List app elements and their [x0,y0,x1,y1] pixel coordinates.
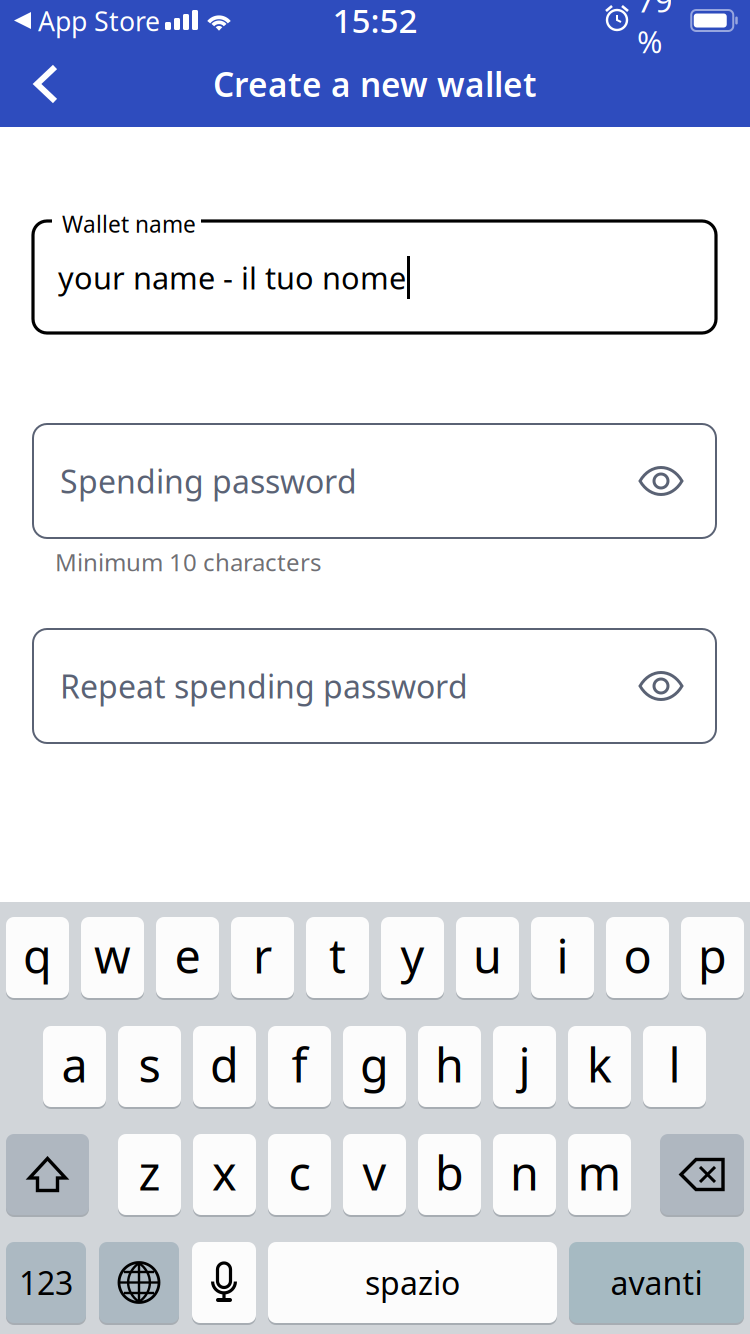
button[interactable]: t [306,917,369,998]
button[interactable]: q [6,917,69,998]
button[interactable]: Dictation [192,1242,256,1323]
button[interactable]: o [606,917,669,998]
staticText: your name - il tuo nome [58,257,406,298]
staticText: Spending password [60,460,357,502]
button[interactable]: a [43,1026,106,1107]
staticText: b [435,1141,464,1203]
staticText: n [510,1141,539,1203]
button[interactable]: d [193,1026,256,1107]
button[interactable]: g [343,1026,406,1107]
button[interactable]: k [568,1026,631,1107]
staticText: Repeat spending password [60,665,468,707]
staticText: d [210,1033,239,1095]
staticText: i [556,924,568,986]
button[interactable]: x [193,1134,256,1215]
button[interactable]: s [118,1026,181,1107]
staticText: v [362,1141,386,1203]
staticText: s [138,1033,160,1095]
staticText: m [577,1141,621,1203]
button[interactable]: avanti [569,1242,744,1323]
staticText: r [253,924,272,986]
button[interactable]: j [493,1026,556,1107]
button[interactable]: i [531,917,594,998]
button[interactable]: v [343,1134,406,1215]
button[interactable]: l [643,1026,706,1107]
button[interactable]: n [493,1134,556,1215]
staticText: k [587,1033,612,1095]
button[interactable]: e [156,917,219,998]
button[interactable]: u [456,917,519,998]
button[interactable]: h [418,1026,481,1107]
staticText: h [435,1033,464,1095]
button[interactable]: c [268,1134,331,1215]
staticText: z [138,1141,160,1203]
button[interactable]: w [81,917,144,998]
button[interactable]: spazio [268,1242,557,1323]
button[interactable]: p [681,917,744,998]
staticText: spazio [365,1261,460,1304]
button[interactable]: z [118,1134,181,1215]
staticText: e [174,924,200,986]
staticText: 79% [637,0,673,62]
staticText: w [94,924,131,986]
button[interactable]: Show password [623,629,699,743]
staticText: Minimum 10 characters [55,546,321,578]
staticText: j [518,1033,530,1095]
button[interactable]: r [231,917,294,998]
staticText: u [473,924,502,986]
button[interactable]: Shift [6,1134,89,1215]
button[interactable]: b [418,1134,481,1215]
staticText: p [698,924,727,986]
button[interactable]: Next keyboard [99,1242,179,1323]
staticText: t [329,924,346,986]
staticText: 15:52 [332,0,417,42]
staticText: a [61,1033,87,1095]
button[interactable]: y [381,917,444,998]
button[interactable]: Delete [660,1134,744,1215]
button[interactable]: 123 [6,1242,86,1323]
staticText: c [288,1141,310,1203]
staticText: Create a new wallet [213,62,537,106]
staticText: q [23,924,52,986]
button[interactable]: m [568,1134,631,1215]
staticText: y [400,924,424,986]
button[interactable]: f [268,1026,331,1107]
staticText: o [623,924,651,986]
staticText: 123 [19,1261,73,1304]
staticText: f [291,1033,307,1095]
staticText: x [212,1141,237,1203]
button[interactable]: Show password [623,424,699,538]
button[interactable]: Back [12,56,80,112]
staticText: avanti [610,1261,702,1304]
staticText: l [668,1033,680,1095]
staticText: g [360,1033,389,1095]
staticText: Wallet name [62,209,196,239]
staticText: App Store [38,3,160,39]
